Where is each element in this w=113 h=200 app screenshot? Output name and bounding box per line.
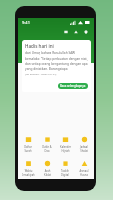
button[interactable]: Quran — [61, 27, 71, 37]
button[interactable]: Arah Kiblat — [38, 160, 56, 176]
staticText: (HR Bukhari - hadis No. 01) — [25, 72, 57, 75]
staticText: Daftar Surah — [24, 145, 32, 152]
button[interactable]: Mosque — [71, 27, 81, 37]
staticText: Waktu Imsakiyah — [22, 169, 35, 176]
button[interactable]: Jadwal Shalat — [75, 136, 93, 152]
staticText: Jadwal Shalat — [80, 145, 88, 152]
staticText: 9:41 — [22, 20, 30, 25]
staticText: Hadis hari ini — [25, 43, 54, 49]
staticText: Dzikir & Doa — [42, 145, 52, 152]
button[interactable]: Baca selengkapnya — [58, 83, 88, 89]
button[interactable]: Tasbih Digital — [56, 160, 74, 176]
button[interactable]: Dzikir & Doa — [38, 136, 56, 152]
staticText: dari Umar, bahwa Rasulullah SAW bersabda… — [25, 51, 88, 71]
staticText: Arah Kiblat — [44, 169, 51, 176]
staticText: Tasbih Digital — [61, 169, 69, 176]
staticText: Asmaul Husna — [79, 169, 89, 176]
button[interactable]: Daftar Surah — [19, 136, 37, 152]
button[interactable]: Waktu Imsakiyah — [19, 160, 37, 176]
staticText: Kalender Hijriah — [60, 145, 71, 152]
button[interactable]: Location — [81, 27, 91, 37]
button[interactable]: Kalender Hijriah — [56, 136, 74, 152]
staticText: Baca selengkapnya — [60, 84, 86, 88]
button[interactable]: Asmaul Husna — [75, 160, 93, 176]
